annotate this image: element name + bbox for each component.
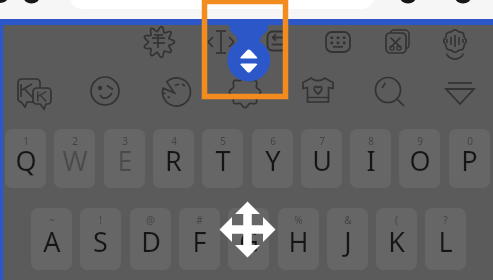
button[interactable]: Keyboard layout [314,18,362,66]
button[interactable]: # [179,208,220,270]
button[interactable]: 0 [449,129,490,188]
button[interactable]: 5 [202,129,243,188]
staticText: T [215,142,231,179]
button[interactable]: 9 [399,129,440,188]
button[interactable]: Font style [135,18,183,66]
staticText: Q [15,142,37,179]
button[interactable]: ( [376,208,417,270]
staticText: S [93,223,108,260]
staticText: ( [395,213,398,227]
staticText: 6 [270,134,276,148]
button[interactable]: 8 [350,129,391,188]
button[interactable]: Backspace [253,17,301,65]
staticText: E [117,142,133,179]
staticText: A [43,223,61,260]
button[interactable]: % [278,208,319,270]
staticText: ! [99,213,102,227]
button[interactable]: Emoji [81,67,129,115]
button[interactable]: 2 [54,129,95,188]
staticText: 1 [23,134,29,148]
staticText: 4 [171,134,177,148]
staticText: K [388,223,405,260]
button[interactable]: @ [130,208,171,270]
staticText: 5 [220,134,226,148]
staticText: ? [443,213,448,227]
staticText: 8 [368,134,374,148]
button[interactable]: Search [366,68,414,116]
button[interactable]: Language [14,67,62,115]
staticText: O [409,142,431,179]
button[interactable]: 3 [104,129,145,188]
staticText: H [288,223,309,260]
button[interactable]: Hide keyboard [436,68,484,116]
button[interactable]: 7 [301,129,342,188]
staticText: ~ [49,213,55,227]
button[interactable]: 1 [5,129,46,188]
staticText: P [461,142,478,179]
staticText: % [294,213,303,227]
staticText: $ [246,213,252,227]
button[interactable]: ? [425,208,466,270]
staticText: @ [146,213,155,227]
staticText: R [165,142,182,179]
staticText: & [344,213,352,227]
button[interactable]: & [327,208,368,270]
button[interactable]: Voice input [431,17,479,65]
button[interactable]: $ [228,208,269,270]
staticText: 7 [319,134,325,148]
staticText: # [196,213,203,227]
staticText: F [192,223,207,260]
staticText: D [141,223,161,260]
button[interactable]: 4 [153,129,194,188]
button[interactable]: Stickers [150,68,198,116]
button[interactable]: 6 [252,129,293,188]
staticText: J [344,223,352,260]
button[interactable]: Clipboard [372,18,420,66]
button[interactable]: ! [80,208,121,270]
staticText: L [438,223,453,260]
button[interactable]: Move text cursor [197,18,245,66]
staticText: 0 [467,134,473,148]
staticText: Y [265,142,281,179]
button[interactable]: Theme [294,66,342,114]
button[interactable]: Settings [221,68,269,116]
button[interactable]: ~ [31,208,72,270]
staticText: 3 [122,134,128,148]
staticText: 9 [417,134,423,148]
staticText: U [312,142,332,179]
staticText: 2 [72,134,78,148]
staticText: G [239,223,259,260]
staticText: W [62,142,88,179]
staticText: I [366,142,376,179]
